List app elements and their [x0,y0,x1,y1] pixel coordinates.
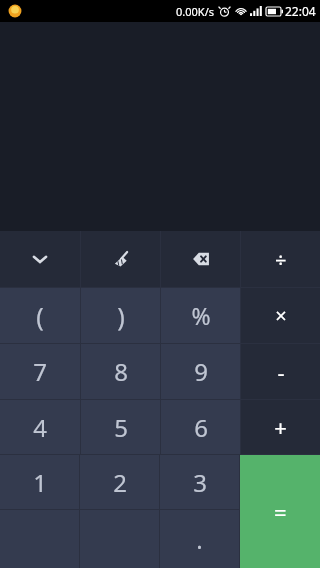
staticText: . [196,523,203,556]
staticText: ÷ [275,246,287,273]
button[interactable]: 7 [0,344,80,399]
button[interactable]: 3 [160,455,239,509]
staticText: 8 [114,355,128,388]
staticText: 1 [33,466,47,499]
button[interactable]: Divide [241,231,320,287]
staticText: 6 [194,411,208,444]
button[interactable]: = [240,455,320,568]
button[interactable]: Collapse [0,231,80,287]
button[interactable]: × [241,288,320,343]
staticText: 3 [193,466,207,499]
staticText: ) [117,299,125,333]
button[interactable]: + [241,400,320,454]
button[interactable]: - [241,344,320,399]
staticText: 9 [194,355,208,388]
staticText: % [191,300,211,331]
button[interactable]: Clear all [81,231,160,287]
button[interactable]: ) [81,288,160,343]
button[interactable]: 8 [81,344,160,399]
staticText: ( [36,299,44,333]
staticText: 2 [113,466,127,499]
button[interactable]: 1 [0,455,79,509]
staticText: 22:04 [285,3,316,19]
staticText: - [277,357,285,387]
staticText: = [274,497,287,527]
staticText: 4 [33,411,47,444]
staticText: + [274,412,287,442]
staticText: × [275,302,287,329]
staticText: 0.00K/s [176,4,214,19]
button[interactable]: 4 [0,400,80,454]
staticText: 5 [114,411,128,444]
button[interactable]: 6 [161,400,240,454]
button[interactable]: % [161,288,240,343]
button[interactable]: 5 [81,400,160,454]
button[interactable]: 9 [161,344,240,399]
staticText: 7 [33,355,47,388]
button[interactable]: 2 [80,455,159,509]
button[interactable]: . [160,510,239,568]
button[interactable]: Backspace [161,231,240,287]
button[interactable]: ( [0,288,80,343]
